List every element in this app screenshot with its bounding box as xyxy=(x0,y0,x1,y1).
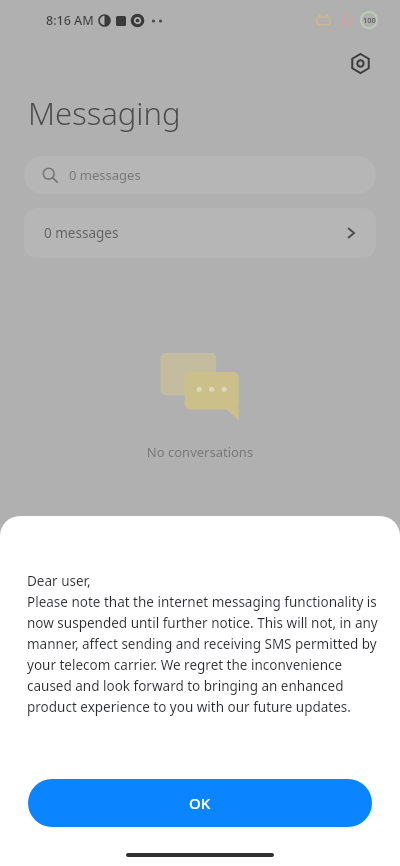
staticText: Dear user, Please note that the internet… xyxy=(27,572,384,716)
button[interactable]: 0 messages xyxy=(24,156,376,194)
staticText: 8:16 AM xyxy=(46,12,94,29)
staticText: 0 messages xyxy=(44,224,119,242)
button[interactable]: 0 messages xyxy=(24,208,376,258)
staticText: Messaging xyxy=(28,92,181,134)
staticText: 0 messages xyxy=(69,166,141,184)
staticText: 100 xyxy=(363,15,376,25)
button[interactable]: OK xyxy=(28,779,372,827)
staticText: No conversations xyxy=(0,443,400,461)
button[interactable]: Settings xyxy=(345,48,375,78)
staticText: OK xyxy=(189,793,211,813)
